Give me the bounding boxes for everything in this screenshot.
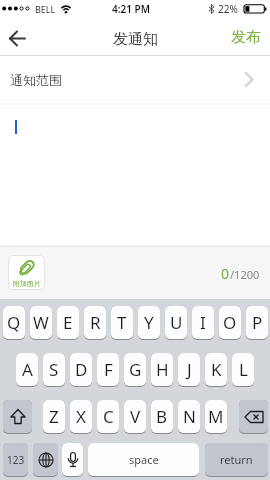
button[interactable]: G <box>124 353 146 387</box>
button[interactable]: 通知范围 <box>0 56 270 104</box>
staticText: 发通知 <box>113 30 158 49</box>
staticText: /1200 <box>230 267 260 282</box>
staticText: H <box>156 358 169 381</box>
staticText: 0 <box>221 264 230 283</box>
staticText: return <box>220 452 253 467</box>
button[interactable]: 发布 <box>222 18 270 56</box>
staticText: M <box>208 405 224 428</box>
staticText: BELL <box>35 3 56 15</box>
staticText: 发布 <box>231 28 261 47</box>
staticText: space <box>129 452 159 467</box>
button[interactable]: W <box>30 306 52 340</box>
button[interactable]: M <box>205 400 227 434</box>
button[interactable]: F <box>97 353 119 387</box>
staticText: 22% <box>218 2 238 16</box>
staticText: 4:21 PM <box>112 2 150 16</box>
button[interactable]: H <box>151 353 173 387</box>
staticText: R <box>90 311 101 334</box>
staticText: J <box>187 358 192 381</box>
staticText: W <box>33 311 49 334</box>
button[interactable] <box>33 443 58 477</box>
button[interactable]: V <box>124 400 146 434</box>
staticText: E <box>63 311 73 334</box>
button[interactable]: P <box>246 306 268 340</box>
button[interactable]: Z <box>43 400 65 434</box>
button[interactable]: E <box>57 306 79 340</box>
staticText: F <box>104 358 113 381</box>
button[interactable]: S <box>43 353 65 387</box>
staticText: 通知范围 <box>10 72 62 88</box>
button[interactable] <box>239 400 268 434</box>
staticText: Z <box>49 405 59 428</box>
button[interactable]: A <box>16 353 38 387</box>
button[interactable]: O <box>219 306 241 340</box>
staticText: B <box>156 405 168 428</box>
button[interactable]: C <box>97 400 119 434</box>
staticText: V <box>130 405 141 428</box>
staticText: U <box>170 311 183 334</box>
button[interactable]: return <box>205 443 268 477</box>
staticText: Q <box>7 311 21 334</box>
staticText: K <box>211 358 222 381</box>
button[interactable]: Q <box>3 306 25 340</box>
button[interactable] <box>62 443 83 477</box>
button[interactable]: I <box>192 306 214 340</box>
staticText: O <box>223 311 237 334</box>
staticText: D <box>75 358 88 381</box>
staticText: P <box>252 311 263 334</box>
staticText: A <box>22 358 33 381</box>
button[interactable]: 123 <box>3 443 28 477</box>
button[interactable]: L <box>232 353 254 387</box>
staticText: S <box>49 358 59 381</box>
button[interactable]: Y <box>138 306 160 340</box>
button[interactable]: T <box>111 306 133 340</box>
button[interactable]: D <box>70 353 92 387</box>
staticText: I <box>200 311 206 334</box>
button[interactable] <box>3 400 32 434</box>
staticText: L <box>239 358 248 381</box>
button[interactable]: B <box>151 400 173 434</box>
button[interactable]: 附加图片 <box>8 255 45 290</box>
staticText: T <box>117 311 127 334</box>
staticText: C <box>103 405 114 428</box>
staticText: N <box>183 405 196 428</box>
button[interactable] <box>0 18 44 56</box>
button[interactable]: J <box>178 353 200 387</box>
button[interactable]: N <box>178 400 200 434</box>
staticText: 附加图片 <box>13 279 41 288</box>
staticText: Y <box>144 311 154 334</box>
button[interactable]: X <box>70 400 92 434</box>
button[interactable]: R <box>84 306 106 340</box>
staticText: X <box>76 405 86 428</box>
staticText: 123 <box>7 453 25 467</box>
button[interactable]: space <box>88 443 199 477</box>
button[interactable]: K <box>205 353 227 387</box>
staticText: G <box>129 358 142 381</box>
button[interactable]: U <box>165 306 187 340</box>
